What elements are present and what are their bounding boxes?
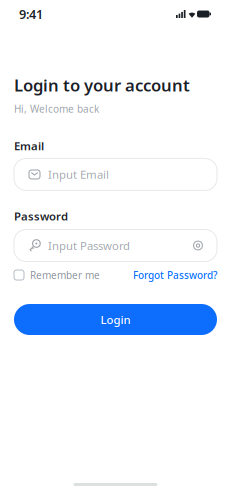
staticText: Password: [14, 208, 68, 223]
staticText: Login to your account: [14, 74, 190, 96]
staticText: 9:41: [19, 6, 43, 22]
staticText: Login: [100, 312, 130, 327]
button[interactable]: Login: [14, 304, 217, 335]
staticText: Forgot Password?: [133, 268, 217, 282]
staticText: Input Email: [48, 167, 109, 182]
staticText: Email: [14, 138, 44, 153]
button[interactable]: Remember me: [14, 268, 100, 282]
staticText: Remember me: [30, 268, 100, 282]
staticText: Hi, Welcome back: [14, 102, 99, 115]
button[interactable]: Show password: [193, 240, 203, 250]
button[interactable]: Forgot Password?: [133, 268, 217, 282]
staticText: Input Password: [48, 238, 130, 253]
